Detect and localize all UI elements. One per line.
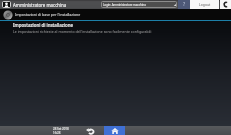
button[interactable]: Indietro xyxy=(82,126,97,135)
staticText: 28 Set 2018 xyxy=(53,127,69,131)
button[interactable]: Utente xyxy=(2,1,11,8)
staticText: ? xyxy=(183,1,186,8)
staticText: Logout xyxy=(199,2,211,7)
button[interactable]: Login: Amministratore macchina xyxy=(101,1,177,8)
staticText: Le impostazioni richieste al momento del… xyxy=(13,29,152,34)
staticText: 16:28 xyxy=(53,131,61,135)
button[interactable]: Logout xyxy=(190,0,219,9)
button[interactable]: Standby xyxy=(220,0,231,9)
staticText: Login: Amministratore macchina xyxy=(103,3,146,7)
button[interactable]: Aiuto xyxy=(178,0,190,9)
staticText: Impostazioni di base per l'installazione xyxy=(15,12,81,17)
staticText: Impostazioni di installazione xyxy=(13,22,73,28)
staticText: Amministratore macchina xyxy=(13,2,67,8)
button[interactable]: Home xyxy=(104,126,125,135)
